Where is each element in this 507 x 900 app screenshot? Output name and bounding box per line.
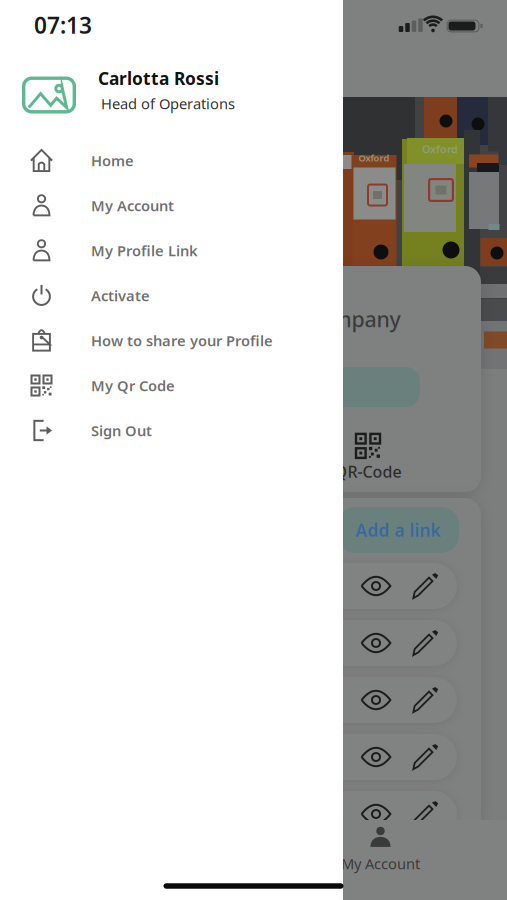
staticText: Sign Out — [91, 421, 152, 440]
button[interactable]: Share profile — [45, 367, 420, 407]
button[interactable]: My Profile Link — [0, 228, 343, 273]
button[interactable]: Home — [0, 138, 343, 183]
button[interactable]: Preview link — [354, 564, 398, 608]
staticText: How to share your Profile — [91, 331, 273, 350]
staticText: Activate — [91, 286, 150, 305]
button[interactable]: Edit link — [403, 564, 447, 608]
button[interactable]: Add a link — [337, 507, 459, 553]
button[interactable]: My Qr Code — [0, 363, 343, 408]
button[interactable]: Preview link — [354, 678, 398, 722]
button[interactable]: Preview link — [354, 621, 398, 665]
staticText: Carlotta Rossi — [98, 67, 219, 90]
staticText: Add a link — [355, 518, 440, 541]
button[interactable]: Edit link — [403, 678, 447, 722]
staticText: Home — [91, 151, 134, 170]
staticText: My Qr Code — [91, 376, 175, 395]
staticText: My Company — [267, 305, 400, 333]
staticText: Head of Operations — [101, 94, 235, 113]
button[interactable]: How to share your Profile — [0, 318, 343, 363]
button[interactable]: Preview link — [354, 735, 398, 779]
button[interactable]: QR-Code — [328, 432, 408, 484]
button[interactable]: Preview link — [354, 792, 398, 836]
staticText: My Account — [341, 854, 420, 873]
button[interactable]: Sign Out — [0, 408, 343, 453]
staticText: My Account — [91, 196, 174, 215]
staticText: 07:13 — [34, 10, 92, 40]
button[interactable]: My Account — [0, 183, 343, 228]
button[interactable]: Edit link — [403, 621, 447, 665]
button[interactable]: My Account — [325, 822, 435, 878]
staticText: Oxford — [422, 142, 458, 156]
staticText: QR-Code — [334, 461, 401, 482]
staticText: Oxford — [358, 152, 389, 164]
button[interactable]: Carlotta Rossi — [0, 65, 343, 125]
button[interactable]: Activate — [0, 273, 343, 318]
staticText: My Profile Link — [91, 241, 198, 260]
button[interactable]: Edit link — [403, 792, 447, 836]
button[interactable]: Edit link — [403, 735, 447, 779]
